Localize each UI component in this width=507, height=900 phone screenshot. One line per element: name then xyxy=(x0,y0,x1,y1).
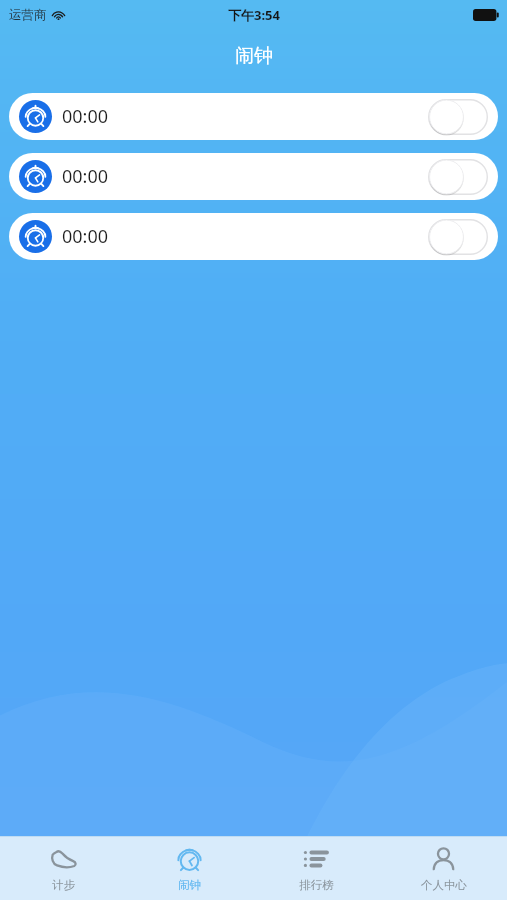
staticText: 下午3:54 xyxy=(228,6,280,24)
staticText: 00:00 xyxy=(62,104,109,129)
button[interactable]: Toggle alarm xyxy=(428,219,488,255)
other: Profile xyxy=(430,846,457,873)
button[interactable]: Profile xyxy=(380,837,507,900)
button[interactable]: Leaderboard xyxy=(253,837,380,900)
staticText: 运营商 xyxy=(9,7,47,23)
other: Alarm xyxy=(19,160,52,193)
other: Alarm xyxy=(19,220,52,253)
other: Alarm xyxy=(19,100,52,133)
staticText: 排行榜 xyxy=(299,878,334,892)
staticText: 00:00 xyxy=(62,224,109,249)
button[interactable]: Toggle alarm xyxy=(428,99,488,135)
button[interactable]: Alarm xyxy=(9,153,498,200)
button[interactable]: Toggle alarm xyxy=(428,159,488,195)
button[interactable]: Alarm xyxy=(126,837,253,900)
staticText: 闹钟 xyxy=(178,878,201,892)
button[interactable]: Steps xyxy=(0,837,126,900)
staticText: 个人中心 xyxy=(421,878,467,892)
button[interactable]: Alarm xyxy=(9,213,498,260)
button[interactable]: Alarm xyxy=(9,93,498,140)
staticText: 闹钟 xyxy=(235,44,273,68)
staticText: 计步 xyxy=(52,878,75,892)
staticText: 00:00 xyxy=(62,164,109,189)
other: Alarm xyxy=(176,846,203,873)
other: Steps xyxy=(50,846,77,873)
other: Leaderboard xyxy=(303,846,330,873)
